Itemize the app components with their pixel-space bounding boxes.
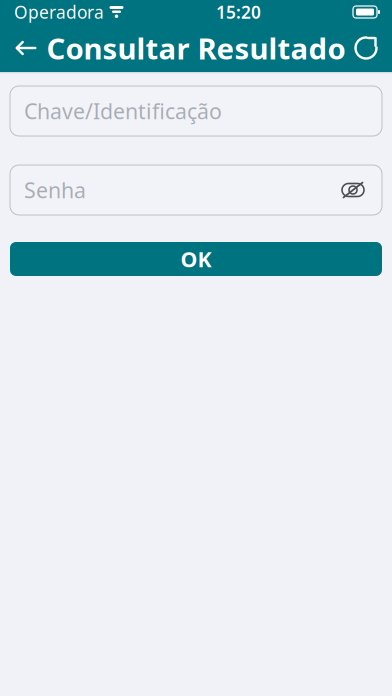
staticText: 15:20 bbox=[216, 0, 261, 23]
staticText: Chave/Identificação bbox=[24, 97, 222, 125]
staticText: Senha bbox=[24, 176, 86, 204]
button[interactable]: OK bbox=[10, 242, 382, 276]
staticText: Consultar Resultado bbox=[46, 28, 345, 67]
button[interactable]: Back bbox=[0, 24, 52, 72]
staticText: Operadora bbox=[14, 0, 104, 23]
button[interactable]: Refresh bbox=[340, 24, 392, 72]
button[interactable]: Chave/Identificação bbox=[10, 86, 382, 136]
button[interactable]: Senha bbox=[10, 165, 382, 215]
staticText: OK bbox=[180, 245, 211, 273]
